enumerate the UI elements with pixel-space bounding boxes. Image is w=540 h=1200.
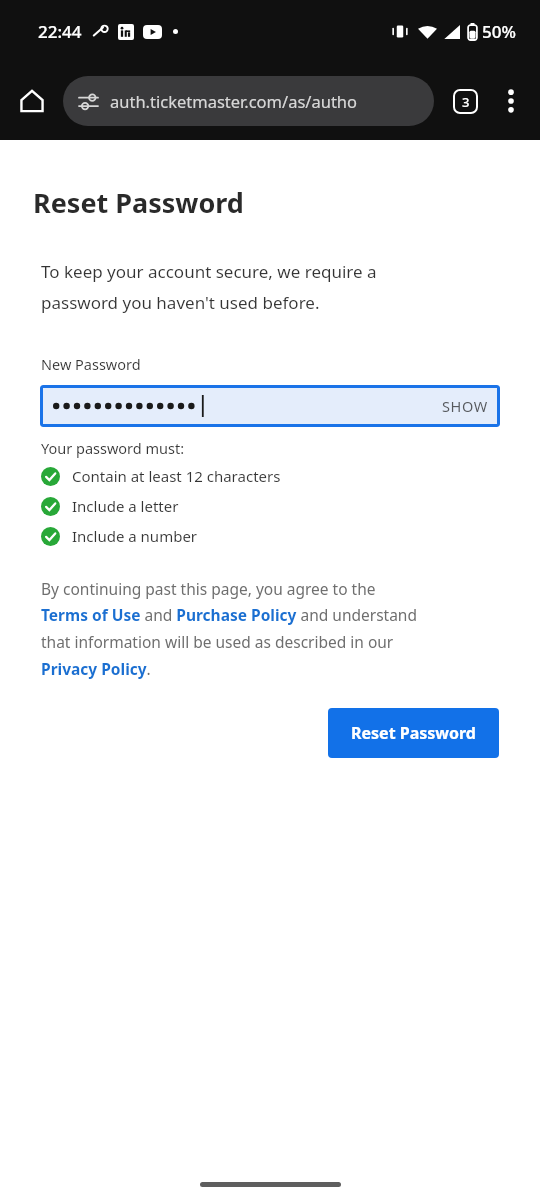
- staticText: Include a number: [72, 526, 198, 546]
- staticText: Contain at least 12 characters: [72, 466, 281, 486]
- staticText: To keep your account secure, we require …: [41, 260, 377, 314]
- staticText: Reset Password: [33, 184, 244, 221]
- staticText: 22:44: [38, 20, 82, 43]
- staticText: 3: [462, 93, 470, 111]
- staticText: Include a letter: [72, 496, 179, 516]
- button[interactable]: Tabs, 3 open: [444, 80, 486, 122]
- staticText: SHOW: [442, 396, 488, 416]
- button[interactable]: Reset Password: [328, 708, 499, 758]
- button[interactable]: SHOW: [40, 385, 500, 427]
- staticText: Your password must:: [41, 438, 185, 458]
- button[interactable]: auth.ticketmaster.com/as/autho: [63, 76, 434, 126]
- button[interactable]: SHOW: [430, 385, 500, 427]
- staticText: New Password: [41, 354, 141, 374]
- button[interactable]: Home: [10, 79, 54, 123]
- button[interactable]: More options: [490, 80, 532, 122]
- staticText: auth.ticketmaster.com/as/autho: [110, 90, 358, 112]
- staticText: Reset Password: [351, 722, 476, 744]
- staticText: By continuing past this page, you agree …: [41, 578, 417, 680]
- staticText: 50%: [482, 20, 516, 43]
